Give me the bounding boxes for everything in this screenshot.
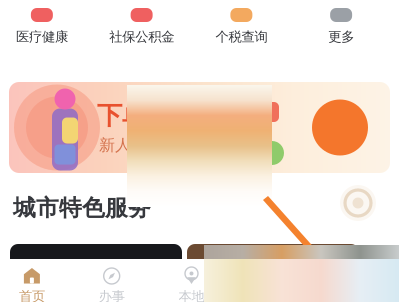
button[interactable]: Customer service [340,185,376,221]
button[interactable]: 社保公积金 [92,0,192,48]
button[interactable]: 本地 [152,259,231,302]
button[interactable]: 我的 [311,259,391,302]
staticText: 城市特色服务 [13,194,151,222]
staticText: 新人首单优惠 [99,135,195,155]
button[interactable]: 个税查询 [191,0,291,48]
staticText: 下单立减 [97,100,197,131]
staticText: 医疗健康 [16,29,68,45]
staticText: 消息 [258,288,284,302]
staticText: 更多 [328,29,354,45]
staticText: 社保公积金 [109,29,174,45]
button[interactable]: 办事 [72,259,152,302]
staticText: 我的 [338,288,364,302]
staticText: 本地 [178,288,204,302]
staticText: 首页 [19,288,45,302]
staticText: 个税查询 [215,29,267,45]
staticText: 办事 [99,288,125,302]
button[interactable]: 医疗健康 [0,0,92,48]
button[interactable]: 首页 [0,259,72,302]
button[interactable]: 消息 [231,259,311,302]
button[interactable]: 下单立减 [9,82,390,173]
button[interactable]: 更多 [291,0,391,48]
